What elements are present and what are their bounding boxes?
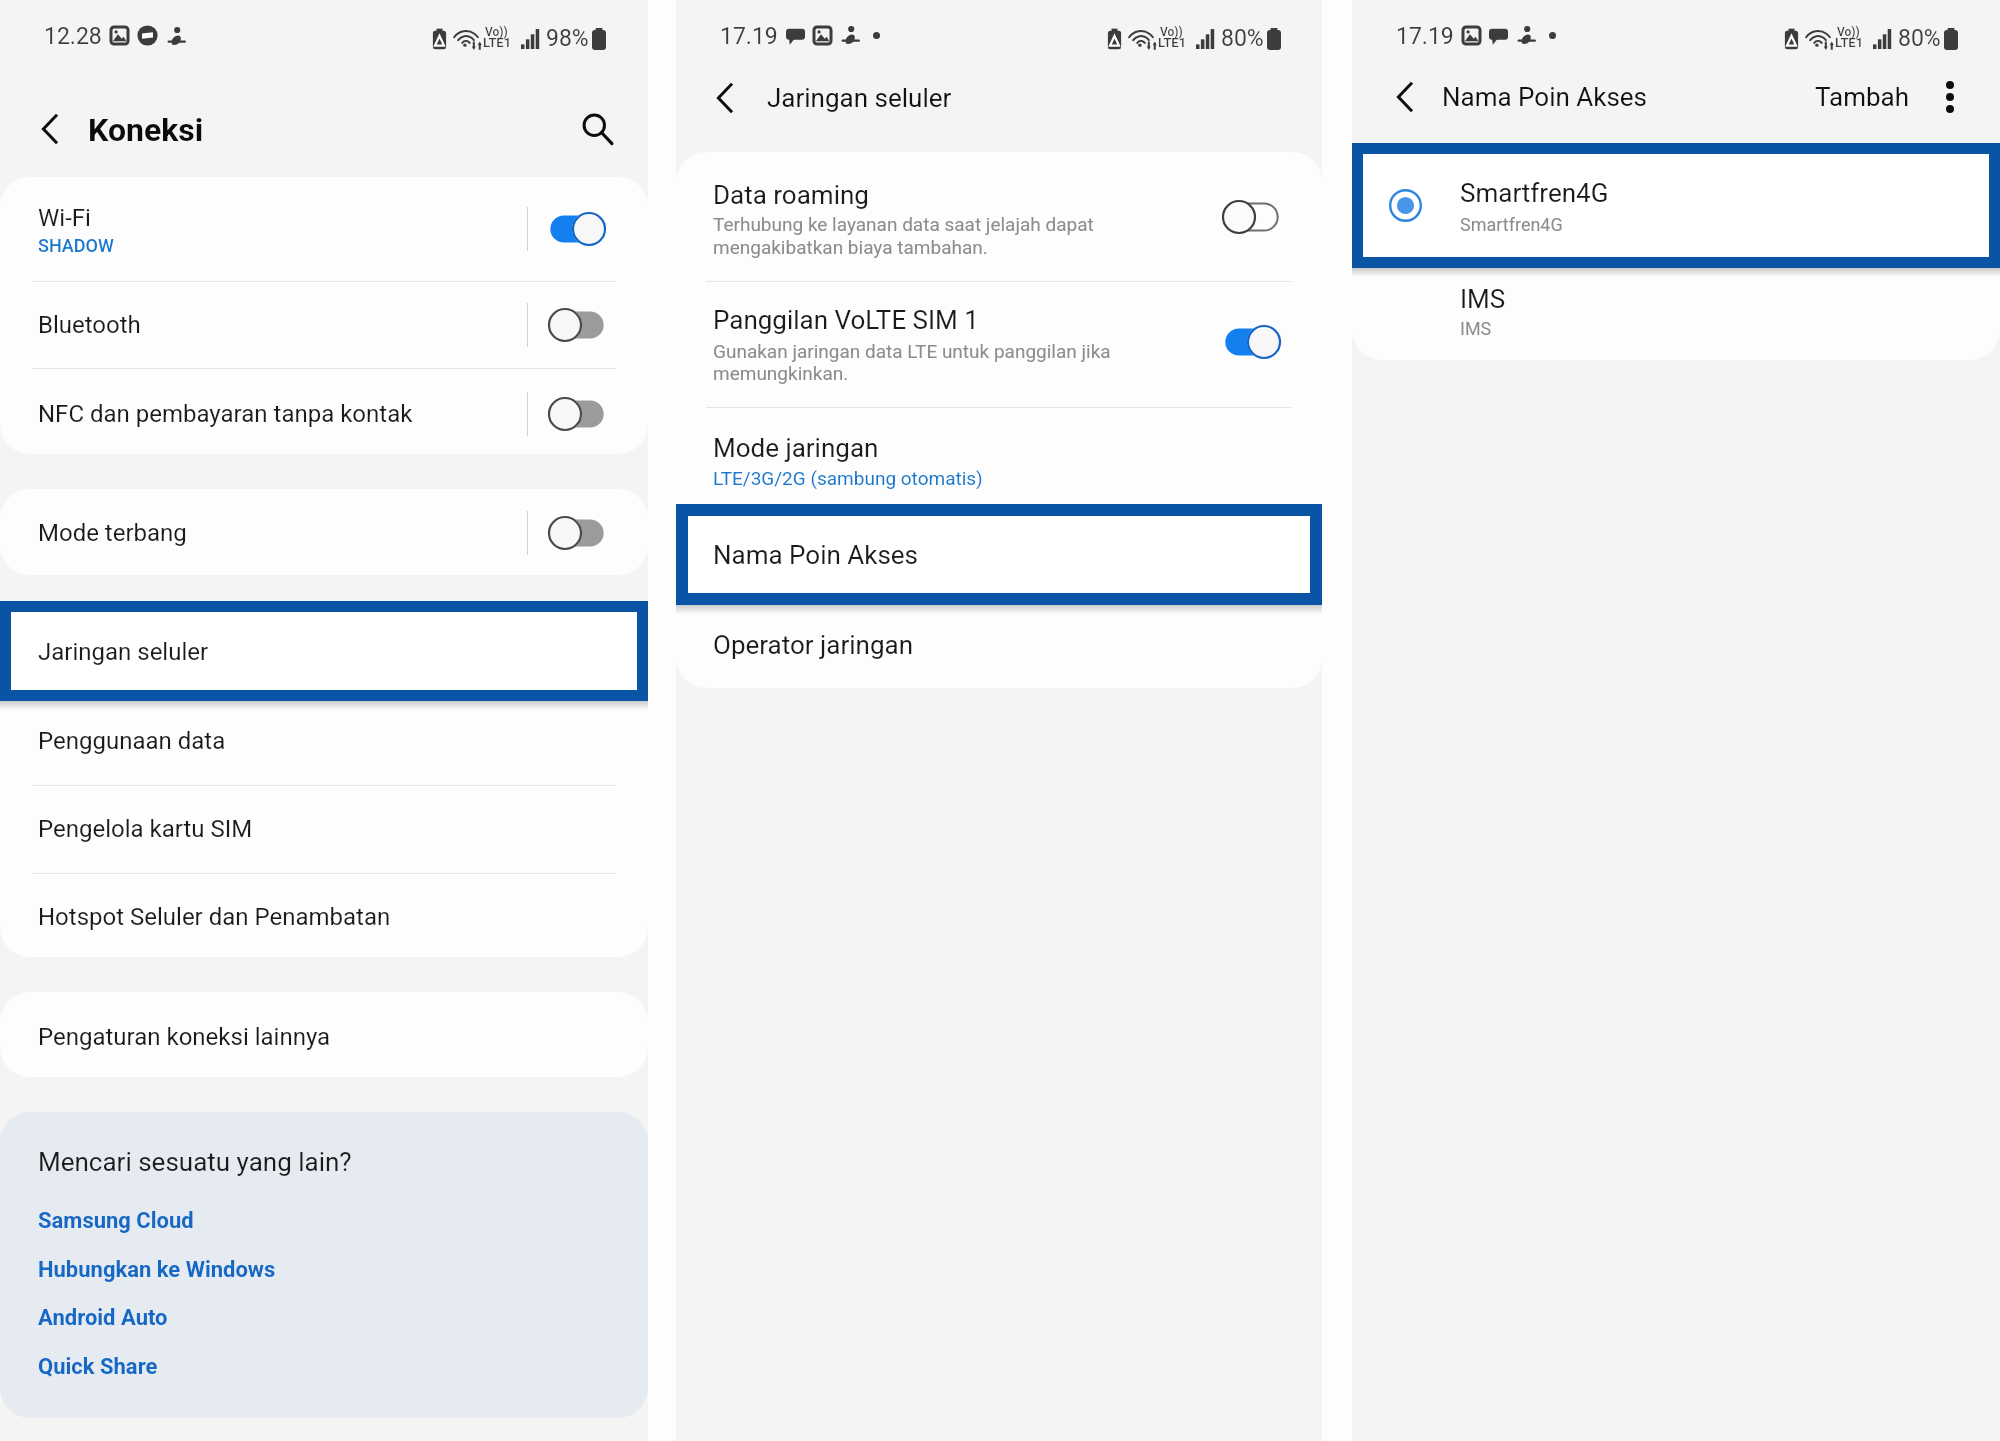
staticText: Mode jaringan [713,433,879,463]
staticText: Vo)) [1160,25,1183,39]
button[interactable] [676,605,1322,688]
button[interactable] [11,612,637,690]
button[interactable] [0,992,648,1077]
staticText: 80% [1898,25,1941,52]
staticText: Jaringan seluler [767,83,952,113]
staticText: Pengaturan koneksi lainnya [38,1023,331,1051]
staticText: 80% [1221,25,1264,52]
staticText: Quick Share [38,1354,158,1380]
button[interactable] [0,874,648,957]
staticText: 17.19 [720,23,778,50]
staticText: 17.19 [1396,23,1454,50]
button[interactable] [0,489,648,575]
staticText: Smartfren4G [1460,178,1609,208]
button[interactable] [548,516,606,550]
staticText: LTE1 [483,35,512,50]
staticText: Gunakan jaringan data LTE untuk panggila… [713,340,1111,362]
staticText: Vo)) [1837,25,1860,39]
staticText: memungkinkan. [713,362,849,384]
staticText: Data roaming [713,180,869,210]
staticText: mengakibatkan biaya tambahan. [713,236,988,258]
button[interactable]: Hubungkan ke Windows [38,1257,276,1283]
button[interactable] [0,177,648,281]
staticText: Nama Poin Akses [713,540,919,570]
button[interactable]: Back [697,70,753,126]
button[interactable] [0,701,648,785]
button[interactable]: Tambah [1807,71,1917,123]
staticText: SHADOW [38,235,114,256]
staticText: IMS [1460,284,1506,314]
staticText: Samsung Cloud [38,1208,194,1234]
staticText: Bluetooth [38,311,141,339]
staticText: LTE1 [1835,35,1864,50]
staticText: Hubungkan ke Windows [38,1257,276,1283]
staticText: Koneksi [88,111,204,149]
staticText: Nama Poin Akses [1442,82,1648,112]
staticText: Android Auto [38,1305,168,1331]
button[interactable] [548,308,606,342]
button[interactable] [676,408,1322,504]
button[interactable] [548,397,606,431]
staticText: 98% [546,25,589,52]
button[interactable]: Back [22,101,78,157]
button[interactable] [0,282,648,368]
staticText: NFC dan pembayaran tanpa kontak [38,400,413,428]
staticText: Mencari sesuatu yang lain? [38,1147,352,1177]
button[interactable] [676,282,1322,407]
staticText: Vo)) [485,25,508,39]
staticText: 12.28 [44,23,102,50]
button[interactable] [1363,154,1989,257]
button[interactable]: Quick Share [38,1354,158,1380]
button[interactable] [0,786,648,873]
button[interactable] [1352,268,2000,360]
staticText: Tambah [1815,82,1910,112]
staticText: LTE/3G/2G (sambung otomatis) [713,467,983,489]
staticText: Panggilan VoLTE SIM 1 [713,305,979,335]
button[interactable]: Search [569,101,625,157]
button[interactable]: Samsung Cloud [38,1208,194,1234]
staticText: Pengelola kartu SIM [38,815,253,843]
button[interactable]: More options [1922,69,1978,125]
staticText: Jaringan seluler [38,638,209,666]
staticText: Smartfren4G [1460,214,1563,235]
staticText: Hotspot Seluler dan Penambatan [38,903,391,931]
staticText: Wi-Fi [38,204,91,232]
button[interactable] [688,516,1310,593]
staticText: Mode terbang [38,519,187,547]
button[interactable] [1223,325,1281,359]
staticText: Terhubung ke layanan data saat jelajah d… [713,213,1094,235]
button[interactable]: Back [1377,69,1433,125]
button[interactable] [0,369,648,454]
staticText: LTE1 [1158,35,1187,50]
staticText: Operator jaringan [713,630,914,660]
staticText: Penggunaan data [38,727,226,755]
button[interactable] [548,212,606,246]
button[interactable]: Android Auto [38,1305,168,1331]
staticText: IMS [1460,318,1492,339]
button[interactable] [676,152,1322,281]
button[interactable] [1222,200,1280,234]
